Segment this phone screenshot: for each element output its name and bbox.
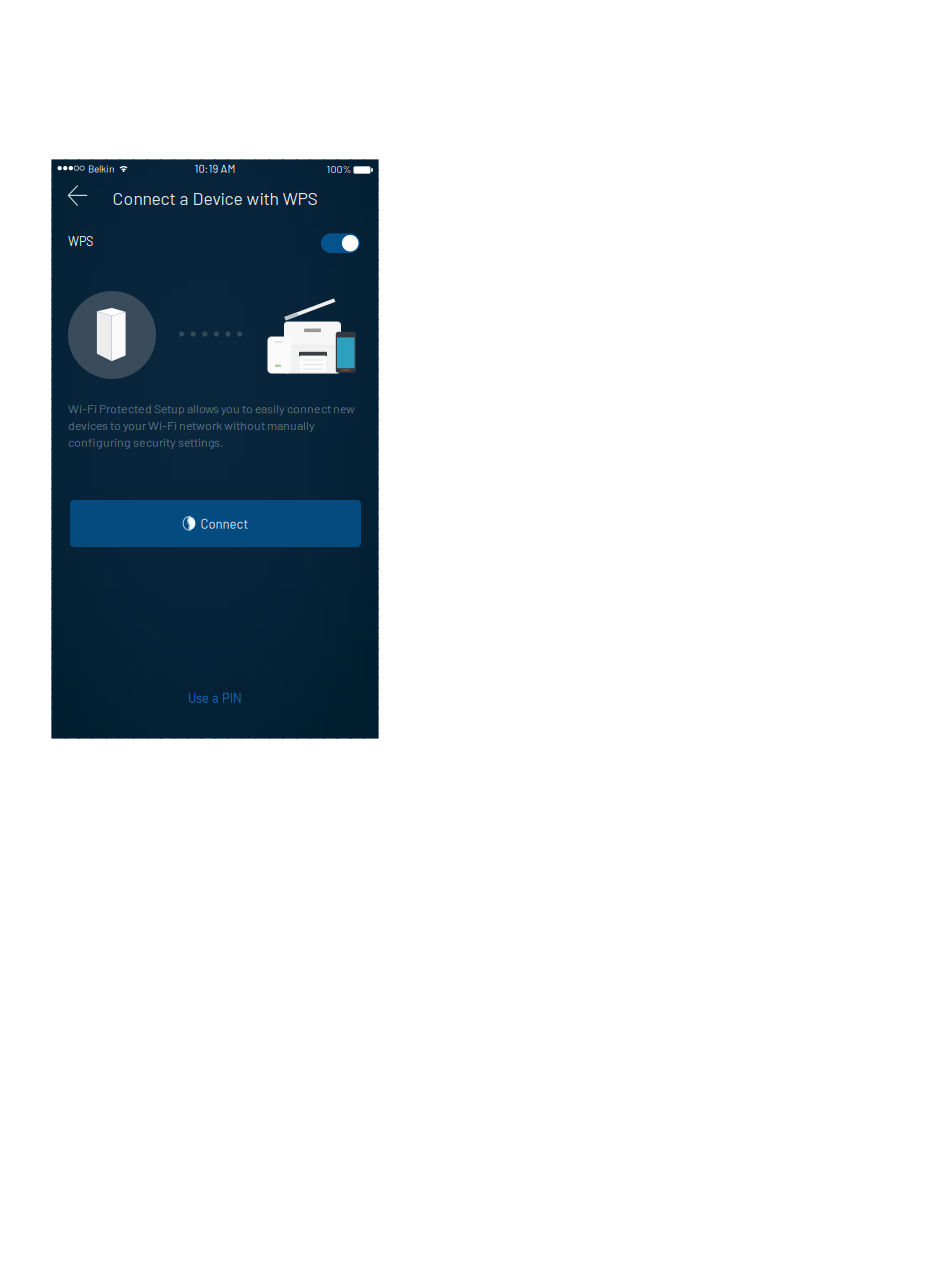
staticText: 10:19 AM xyxy=(194,162,235,175)
staticText: Belkin xyxy=(88,162,114,174)
button[interactable]: WPS xyxy=(315,227,366,259)
staticText: Wi-Fi Protected Setup allows you to easi… xyxy=(68,401,355,449)
staticText: Connect a Device with WPS xyxy=(112,187,317,208)
staticText: 100% xyxy=(326,162,351,175)
button[interactable]: Connect xyxy=(70,500,361,547)
staticText: Use a PIN xyxy=(188,690,242,705)
staticText: Connect xyxy=(200,516,248,531)
button[interactable]: Use a PIN xyxy=(52,682,378,712)
button[interactable]: Back xyxy=(52,180,98,216)
staticText: WPS xyxy=(68,233,93,248)
